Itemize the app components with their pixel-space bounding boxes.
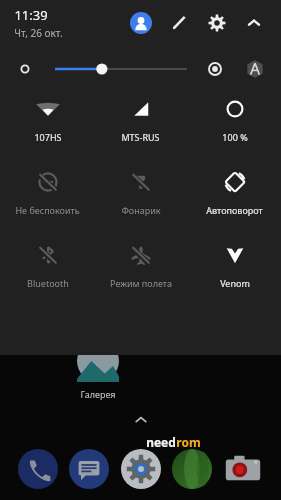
staticText: 100 %: [222, 131, 248, 143]
button[interactable]: Collapse: [243, 12, 265, 34]
button[interactable]: Bluetooth: [1, 242, 94, 289]
button[interactable]: Edit: [168, 12, 190, 34]
staticText: Автоповорот: [206, 204, 263, 216]
staticText: Фонарик: [121, 204, 161, 216]
staticText: 11:39: [14, 6, 48, 24]
staticText: rom: [176, 434, 201, 450]
button[interactable]: Auto brightness: [244, 58, 266, 80]
staticText: Режим полета: [110, 277, 172, 289]
button[interactable]: Messages: [68, 448, 110, 490]
button[interactable]: MTS-RUS: [94, 96, 187, 143]
button[interactable]: Settings: [206, 12, 228, 34]
button[interactable]: Browser: [171, 448, 213, 490]
button[interactable]: Phone: [17, 448, 59, 490]
button[interactable]: Venom: [188, 242, 281, 289]
button[interactable]: Режим полета: [94, 242, 187, 289]
staticText: Не беспокоить: [15, 204, 80, 216]
button[interactable]: 107HS: [1, 96, 94, 143]
button[interactable]: 100 %: [188, 96, 281, 143]
button[interactable]: Галерея: [68, 340, 128, 400]
button[interactable]: Low brightness: [16, 60, 34, 78]
button[interactable]: High brightness: [205, 59, 225, 79]
button[interactable]: Фонарик: [94, 169, 187, 216]
button[interactable]: Автоповорот: [188, 169, 281, 216]
button[interactable]: Не беспокоить: [1, 169, 94, 216]
staticText: Галерея: [80, 388, 116, 400]
button[interactable]: Camera: [222, 448, 264, 490]
button[interactable]: Settings: [120, 448, 162, 490]
staticText: 107HS: [34, 131, 62, 143]
staticText: Bluetooth: [27, 277, 69, 289]
staticText: Venom: [220, 277, 250, 289]
button[interactable]: User: [130, 12, 152, 34]
button[interactable]: All apps: [129, 408, 153, 432]
staticText: Чт, 26 окт.: [14, 26, 63, 40]
button[interactable]: Brightness: [55, 58, 187, 80]
staticText: need: [146, 434, 176, 450]
staticText: MTS-RUS: [121, 131, 160, 143]
